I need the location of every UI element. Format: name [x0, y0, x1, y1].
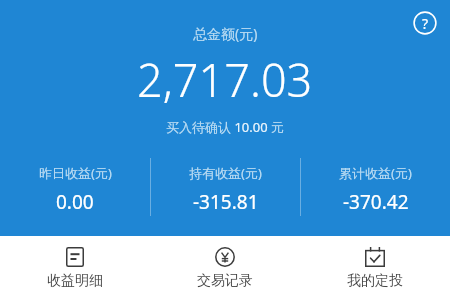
staticText: 0.00	[56, 189, 94, 215]
staticText: 收益明细	[47, 272, 103, 290]
staticText: 持有收益(元)	[189, 164, 262, 182]
staticText: -315.81	[193, 189, 259, 215]
staticText: -370.42	[343, 189, 409, 215]
staticText: 累计收益(元)	[339, 164, 412, 182]
button[interactable]: 交易记录	[150, 236, 300, 300]
staticText: 我的定投	[347, 272, 403, 290]
staticText: 交易记录	[197, 272, 253, 290]
button[interactable]: 持有收益(元)	[151, 158, 300, 220]
button[interactable]: 收益明细	[0, 236, 150, 300]
button[interactable]: 累计收益(元)	[301, 158, 450, 220]
button[interactable]: 昨日收益(元)	[0, 158, 150, 220]
button[interactable]: 我的定投	[300, 236, 450, 300]
staticText: 买入待确认 10.00 元	[166, 118, 284, 136]
staticText: ?	[422, 14, 429, 33]
staticText: 2,717.03	[137, 49, 313, 110]
button[interactable]: Help	[410, 8, 440, 38]
staticText: 总金额(元)	[193, 24, 258, 43]
staticText: 昨日收益(元)	[39, 164, 112, 182]
